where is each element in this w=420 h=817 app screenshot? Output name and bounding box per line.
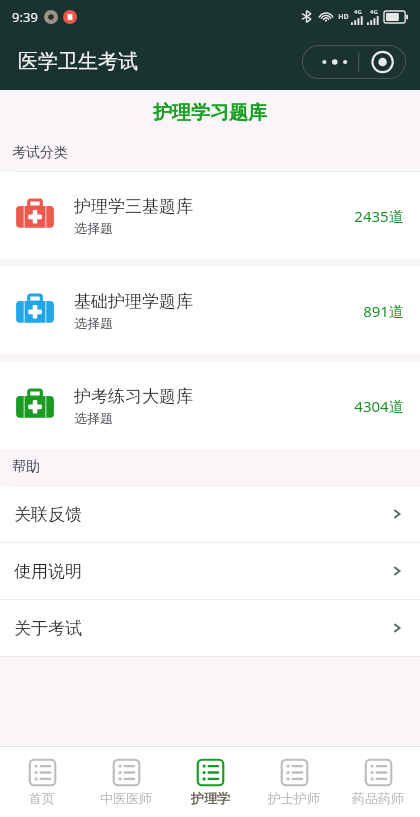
staticText: 4304道 — [354, 396, 404, 416]
staticText: 护理学习题库 — [153, 101, 267, 125]
staticText: 首页 — [29, 790, 55, 806]
button[interactable]: 关联反馈 — [0, 486, 420, 542]
staticText: 护考练习大题库 — [74, 386, 193, 407]
button[interactable]: 护理学 — [168, 752, 252, 812]
staticText: 护士护师 — [268, 790, 320, 806]
staticText: 选择题 — [74, 410, 113, 426]
staticText: 891道 — [363, 301, 404, 321]
button[interactable]: 首页 — [0, 752, 84, 812]
staticText: 药品药师 — [352, 790, 404, 806]
button[interactable]: 基础护理学题库 — [0, 267, 420, 354]
staticText: 关联反馈 — [14, 504, 82, 525]
staticText: HD — [338, 12, 349, 22]
button[interactable]: 关于考试 — [0, 600, 420, 656]
staticText: 关于考试 — [14, 618, 82, 639]
button[interactable] — [302, 45, 406, 79]
button[interactable]: 使用说明 — [0, 543, 420, 599]
staticText: 基础护理学题库 — [74, 291, 193, 312]
staticText: 护理学 — [191, 790, 230, 806]
button[interactable]: 药品药师 — [336, 752, 420, 812]
button[interactable]: 护理学三基题库 — [0, 172, 420, 259]
button[interactable]: 中医医师 — [84, 752, 168, 812]
staticText: 帮助 — [12, 458, 40, 476]
staticText: 4G — [370, 8, 378, 16]
staticText: 使用说明 — [14, 561, 82, 582]
staticText: 选择题 — [74, 220, 113, 236]
button[interactable]: 护士护师 — [252, 752, 336, 812]
staticText: 2435道 — [354, 206, 404, 226]
staticText: 护理学三基题库 — [74, 196, 193, 217]
staticText: 医学卫生考试 — [18, 49, 138, 74]
staticText: 选择题 — [74, 315, 113, 331]
button[interactable]: 护考练习大题库 — [0, 362, 420, 449]
staticText: 中医医师 — [100, 790, 152, 806]
staticText: 4G — [354, 8, 362, 16]
staticText: 9:39 — [12, 8, 38, 26]
staticText: 考试分类 — [12, 144, 68, 162]
